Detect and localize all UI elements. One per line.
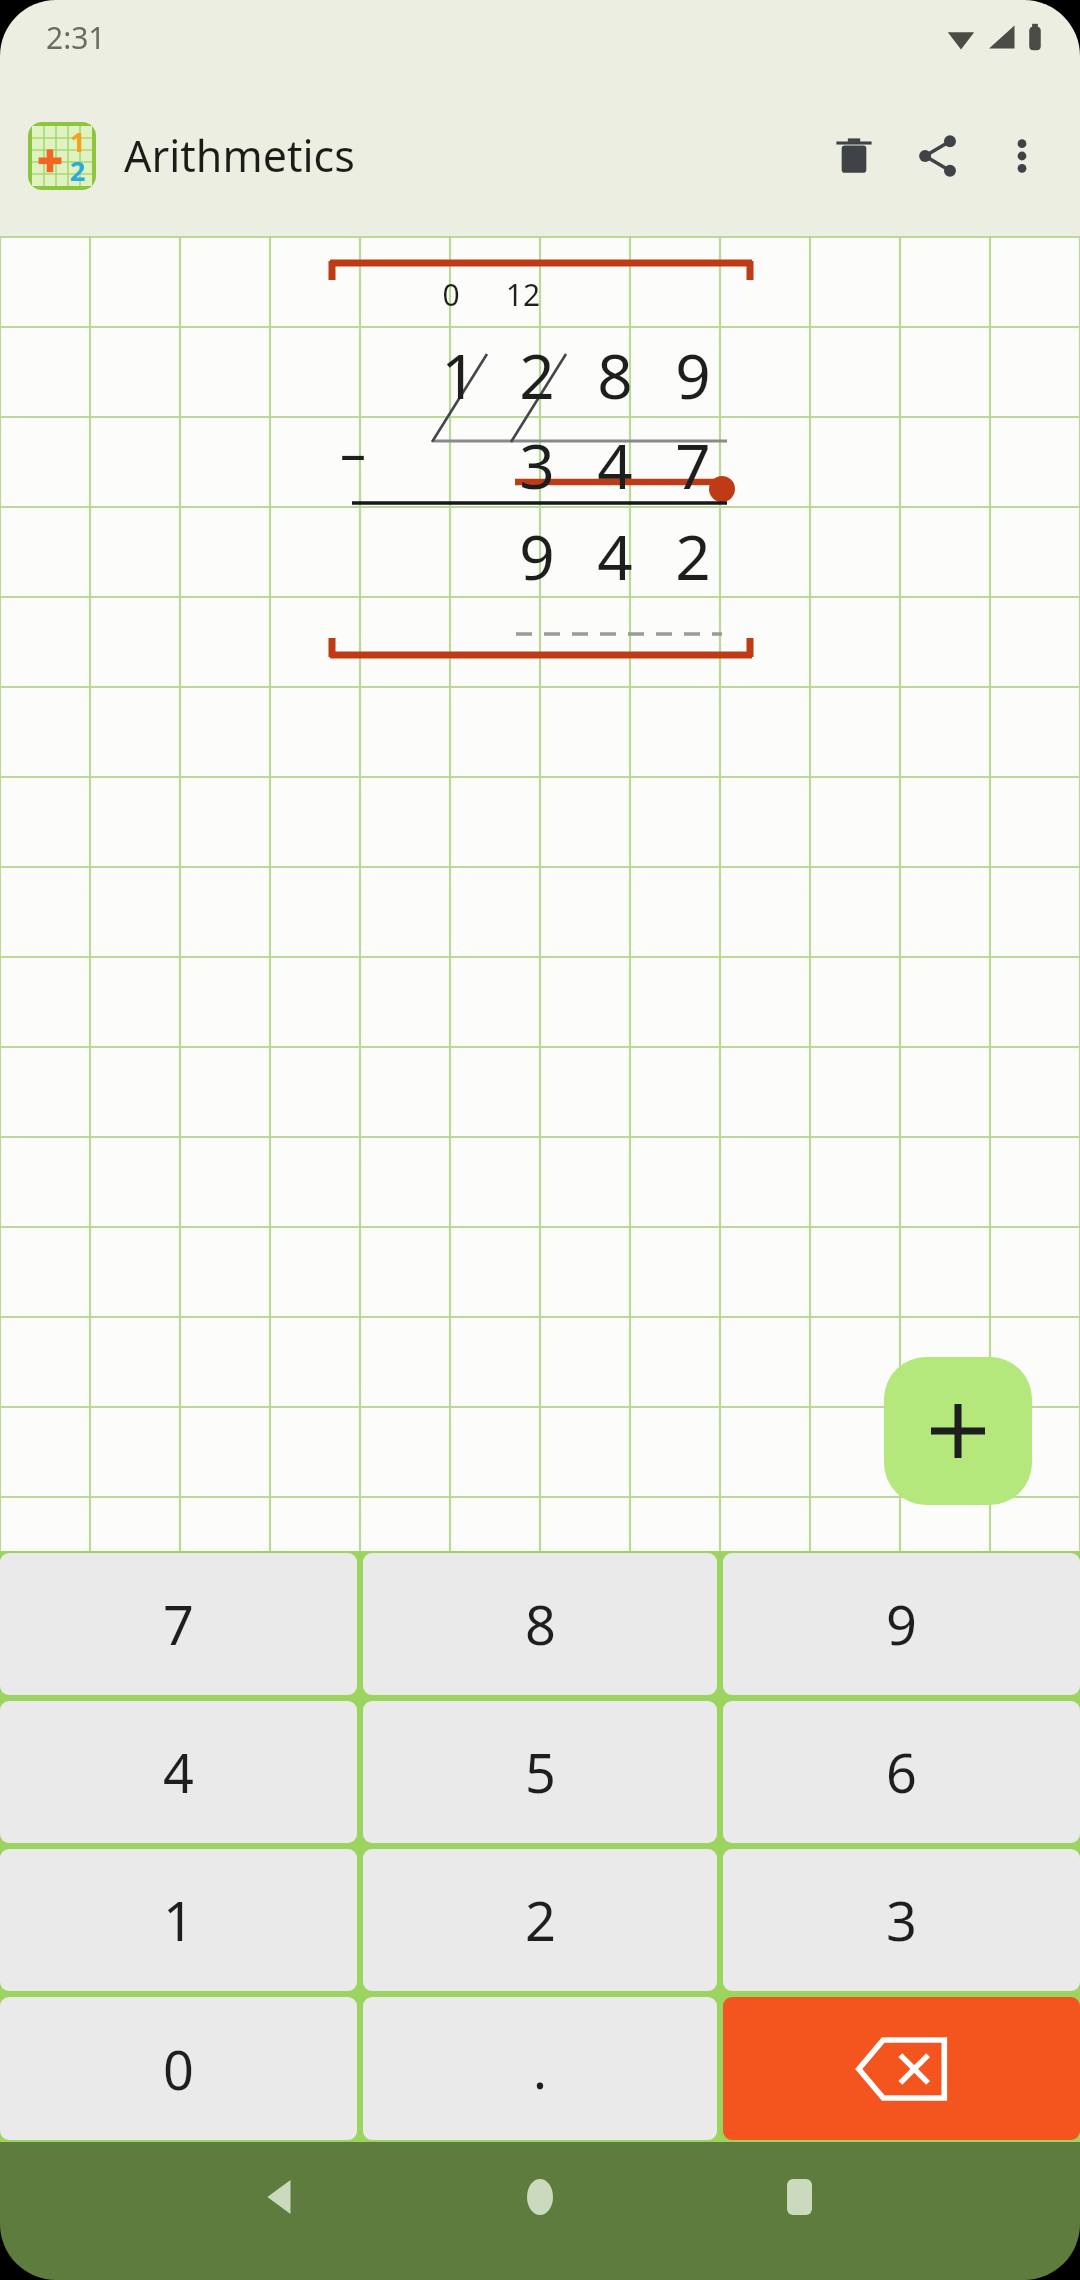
button[interactable]: .: [363, 1997, 717, 2140]
button[interactable]: 8: [363, 1553, 717, 1695]
button[interactable]: Delete: [812, 114, 896, 198]
staticText: 2: [654, 514, 732, 598]
button[interactable]: 3: [723, 1849, 1080, 1991]
staticText: 4: [576, 423, 654, 507]
button[interactable]: Back: [241, 2157, 321, 2237]
staticText: 9: [498, 514, 576, 598]
staticText: .: [533, 2033, 547, 2104]
staticText: 4: [163, 1735, 194, 1809]
button[interactable]: 6: [723, 1701, 1080, 1843]
button[interactable]: 9: [723, 1553, 1080, 1695]
button[interactable]: 2: [363, 1849, 717, 1991]
staticText: 2:31: [46, 17, 106, 58]
button[interactable]: 7: [0, 1553, 357, 1695]
staticText: 8: [525, 1587, 556, 1661]
button[interactable]: Arithmetics: [28, 122, 96, 190]
staticText: 1: [70, 123, 86, 160]
staticText: 6: [886, 1735, 917, 1809]
button[interactable]: 4: [0, 1701, 357, 1843]
staticText: 5: [525, 1735, 556, 1809]
button[interactable]: Recents: [759, 2157, 839, 2237]
staticText: 7: [163, 1587, 194, 1661]
staticText: 2: [525, 1883, 556, 1957]
staticText: 2: [498, 333, 576, 417]
staticText: 9: [654, 333, 732, 417]
button[interactable]: 5: [363, 1701, 717, 1843]
staticText: 12: [494, 274, 552, 315]
staticText: 0: [163, 2032, 194, 2106]
button[interactable]: 0: [0, 1997, 357, 2140]
staticText: 2: [70, 152, 86, 189]
button[interactable]: Add: [884, 1357, 1032, 1505]
staticText: 7: [654, 423, 732, 507]
button[interactable]: Share: [896, 114, 980, 198]
button[interactable]: 1: [0, 1849, 357, 1991]
staticText: 3: [886, 1883, 917, 1957]
staticText: 1: [163, 1883, 194, 1957]
staticText: 9: [886, 1587, 917, 1661]
staticText: 4: [576, 514, 654, 598]
staticText: Arithmetics: [124, 126, 355, 185]
button[interactable]: Home: [500, 2157, 580, 2237]
button[interactable]: More options: [980, 114, 1064, 198]
staticText: 0: [431, 274, 471, 315]
staticText: 8: [576, 333, 654, 417]
button[interactable]: Backspace: [723, 1997, 1080, 2140]
staticText: –: [340, 416, 367, 487]
staticText: 1: [420, 333, 498, 417]
staticText: 3: [498, 423, 576, 507]
